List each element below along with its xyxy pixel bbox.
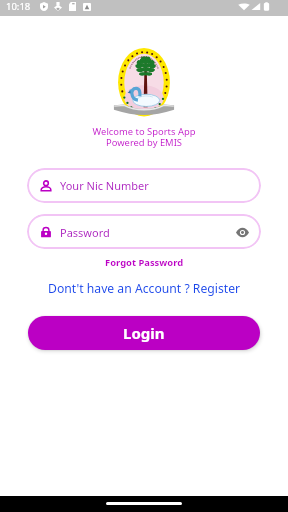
staticText: 10:18	[6, 0, 31, 13]
button[interactable]: Forgot Password	[105, 256, 184, 269]
button[interactable]: Password	[27, 214, 261, 249]
button[interactable]: Dont't have an Account ? Register	[48, 280, 241, 297]
staticText: Password	[60, 225, 110, 240]
staticText: Your Nic Number	[60, 178, 149, 193]
staticText: Welcome to Sports App Powered by EMIS	[0, 125, 288, 148]
staticText: Login	[123, 323, 165, 343]
button[interactable]: Your Nic Number	[27, 168, 261, 203]
staticText: Dont't have an Account ? Register	[48, 280, 241, 297]
button[interactable]: Login	[28, 316, 260, 350]
button[interactable]: Show password	[229, 219, 255, 245]
staticText: Forgot Password	[105, 256, 184, 269]
